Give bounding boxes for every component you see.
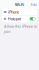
- staticText: Wi-Fi: [15, 2, 24, 7]
- button[interactable]: Hotspot: [2, 15, 37, 22]
- staticText: Hotspot: [8, 16, 21, 21]
- staticText: iPhone: [8, 9, 19, 15]
- staticText: Edit: [30, 2, 36, 7]
- button[interactable]: iPhone: [2, 9, 37, 15]
- staticText: Allow this iPhone to join: [4, 23, 37, 34]
- button[interactable]: Edit: [30, 2, 36, 7]
